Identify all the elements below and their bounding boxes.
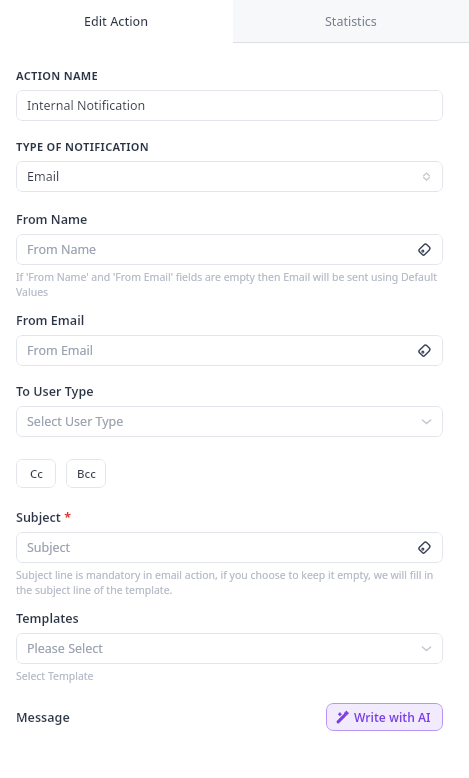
other: Open dropdown [420,415,433,428]
staticText: Write with AI [354,709,431,725]
staticText: Bcc [77,466,96,482]
other: Insert merge tag [416,342,433,359]
button[interactable]: Email [16,161,443,192]
staticText: Message [16,709,70,726]
button[interactable]: Write with AI [326,703,443,731]
button[interactable]: Select User Type [16,406,443,437]
staticText: Select Template [16,669,94,683]
staticText: Subject * [16,509,71,526]
staticText: From Name [27,241,97,258]
staticText: Edit Action [84,13,149,30]
button[interactable]: From Email [16,335,443,366]
button[interactable]: From Name [16,234,443,265]
button[interactable]: Bcc [66,459,106,488]
staticText: ACTION NAME [16,68,98,83]
button[interactable]: Please Select [16,633,443,664]
staticText: Statistics [325,13,377,30]
button[interactable]: Internal Notification [16,90,443,121]
staticText: Templates [16,610,79,627]
button[interactable]: Edit Action [0,0,233,43]
other: Open dropdown [420,642,433,655]
other: Insert merge tag [416,241,433,258]
staticText: From Email [16,312,85,329]
staticText: Subject line is mandatory in email actio… [16,568,443,597]
staticText: Subject [27,539,71,556]
staticText: Select User Type [27,413,124,430]
staticText: Please Select [27,640,103,657]
button[interactable]: Statistics [233,0,469,43]
staticText: From Email [27,342,94,359]
staticText: From Name [16,211,88,228]
staticText: TYPE OF NOTIFICATION [16,139,150,154]
staticText: Internal Notification [27,97,146,114]
button[interactable]: Cc [16,459,56,488]
staticText: If 'From Name' and 'From Email' fields a… [16,270,443,299]
staticText: Email [27,168,60,185]
staticText: To User Type [16,383,94,400]
other: Insert merge tag [416,539,433,556]
other: Select notification type [420,170,433,183]
staticText: Cc [30,466,43,482]
button[interactable]: Subject [16,532,443,563]
